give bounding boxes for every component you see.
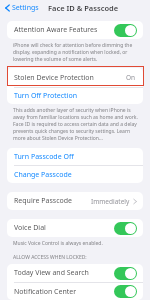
staticText: Stolen Device Protection: [14, 73, 94, 83]
button[interactable]: Stolen Device Protection: [7, 68, 143, 87]
staticText: Require Passcode: [14, 196, 72, 206]
staticText: iPhone will check for attention before d…: [13, 42, 141, 63]
button[interactable]: Toggle, on: [114, 222, 137, 235]
staticText: Change Passcode: [14, 170, 72, 180]
button[interactable]: Toggle, on: [114, 24, 137, 37]
staticText: ALLOW ACCESS WHEN LOCKED:: [13, 254, 87, 261]
staticText: Face ID & Passcode: [48, 3, 119, 13]
staticText: Music Voice Control is always enabled.: [13, 240, 103, 247]
button[interactable]: Voice Dial: [7, 219, 143, 237]
button[interactable]: Attention Aware Features: [7, 21, 143, 39]
staticText: Turn Passcode Off: [14, 152, 74, 162]
staticText: Voice Dial: [14, 223, 46, 233]
staticText: This adds another layer of security when…: [13, 107, 141, 142]
staticText: Settings: [12, 3, 39, 13]
staticText: On: [126, 73, 136, 82]
button[interactable]: Today View and Search: [7, 264, 143, 282]
staticText: Notification Center: [14, 287, 77, 297]
button[interactable]: Change Passcode: [7, 166, 143, 183]
staticText: Immediately: [91, 197, 130, 206]
staticText: Today View and Search: [14, 268, 89, 278]
button[interactable]: Toggle, on: [114, 267, 137, 280]
button[interactable]: Toggle, on: [114, 285, 137, 298]
button[interactable]: Notification Center: [7, 283, 143, 300]
staticText: Turn Off Protection: [14, 91, 77, 101]
button[interactable]: Turn Off Protection: [7, 88, 143, 104]
button[interactable]: Require Passcode: [7, 192, 143, 210]
staticText: Attention Aware Features: [14, 25, 98, 35]
button[interactable]: Turn Passcode Off: [7, 148, 143, 165]
button[interactable]: Settings: [4, 1, 40, 15]
